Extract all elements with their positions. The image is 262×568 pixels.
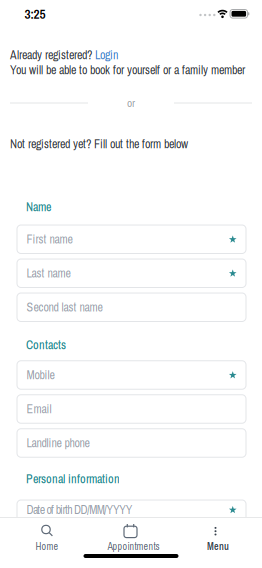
staticText: Mobile — [26, 367, 54, 383]
staticText: Already registered? — [10, 47, 92, 63]
staticText: Home — [35, 540, 58, 553]
staticText: Second last name — [26, 299, 102, 315]
staticText: Not registered yet? Fill out the form be… — [10, 136, 188, 152]
staticText: Landline phone — [26, 435, 89, 451]
staticText: You will be able to book for yourself or… — [10, 62, 245, 78]
staticText: First name — [26, 231, 72, 247]
staticText: Login — [95, 47, 118, 63]
staticText: Appointments — [107, 540, 159, 553]
staticText: Personal information — [26, 471, 120, 487]
staticText: Date of birth DD/MM/YYYY — [26, 502, 133, 518]
staticText: Name — [26, 199, 51, 215]
staticText: or — [127, 95, 135, 111]
staticText: Email — [26, 401, 51, 417]
staticText: Contacts — [26, 337, 66, 353]
staticText: Last name — [26, 265, 70, 281]
staticText: 3:25 — [24, 5, 45, 23]
staticText: Menu — [207, 540, 229, 553]
